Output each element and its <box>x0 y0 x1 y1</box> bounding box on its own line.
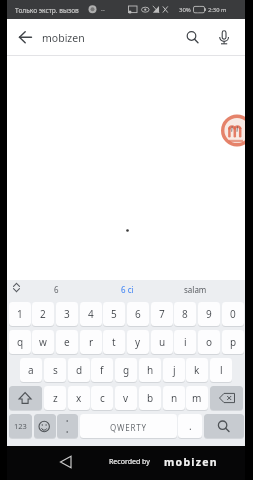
button[interactable]: 7 <box>151 302 173 326</box>
button[interactable]: m <box>186 386 208 410</box>
button[interactable]: u <box>151 330 173 354</box>
staticText: n <box>171 391 178 405</box>
staticText: 2 <box>40 307 46 321</box>
button[interactable] <box>204 414 244 438</box>
staticText: r <box>89 335 94 349</box>
button[interactable]: x <box>68 386 90 410</box>
button[interactable] <box>96 279 158 300</box>
staticText: t <box>112 335 116 349</box>
button[interactable]: k <box>186 358 208 382</box>
button[interactable] <box>14 26 38 50</box>
button[interactable]: v <box>115 386 137 410</box>
staticText: . <box>189 419 192 433</box>
staticText: mobizen <box>42 31 85 45</box>
staticText: 4 <box>88 307 94 321</box>
staticText: b <box>147 391 154 405</box>
staticText: q <box>17 335 24 349</box>
button[interactable]: 5 <box>103 302 125 326</box>
button[interactable]: e <box>56 330 78 354</box>
staticText: 6 <box>54 284 59 295</box>
button[interactable]: f <box>91 358 113 382</box>
button[interactable] <box>8 279 26 299</box>
button[interactable] <box>56 452 78 472</box>
staticText: Только экстр. вызов <box>15 6 79 15</box>
button[interactable] <box>57 414 78 438</box>
button[interactable]: 3 <box>56 302 78 326</box>
staticText: m <box>192 391 202 405</box>
button[interactable]: 123 <box>9 414 32 438</box>
button[interactable]: a <box>20 358 42 382</box>
button[interactable]: l <box>210 358 232 382</box>
button[interactable]: q <box>9 330 31 354</box>
button[interactable]: h <box>139 358 161 382</box>
staticText: 2:30 m <box>208 6 227 14</box>
staticText: h <box>147 363 154 377</box>
staticText: 6 <box>135 307 141 321</box>
staticText: 0 <box>230 307 236 321</box>
button[interactable]: o <box>198 330 220 354</box>
staticText: e <box>64 335 70 349</box>
button[interactable] <box>32 279 80 300</box>
button[interactable]: y <box>127 330 149 354</box>
staticText: a <box>28 363 34 377</box>
button[interactable] <box>80 414 177 438</box>
staticText: mobizen <box>164 455 218 469</box>
staticText: p <box>230 335 237 349</box>
button[interactable] <box>221 114 245 147</box>
button[interactable]: 1 <box>9 302 31 326</box>
staticText: 3 <box>64 307 70 321</box>
button[interactable]: i <box>174 330 196 354</box>
staticText: 8 <box>182 307 188 321</box>
button[interactable]: t <box>103 330 125 354</box>
button[interactable]: b <box>139 386 161 410</box>
button[interactable]: 0 <box>222 302 244 326</box>
staticText: v <box>123 391 129 405</box>
button[interactable]: c <box>91 386 113 410</box>
staticText: 123 <box>14 421 27 431</box>
staticText: l <box>220 363 223 377</box>
staticText: s <box>53 363 58 377</box>
staticText: 30% <box>179 6 191 14</box>
staticText: i <box>184 335 187 349</box>
staticText: y <box>135 335 141 349</box>
button[interactable]: d <box>68 358 90 382</box>
button[interactable]: . <box>178 414 202 438</box>
button[interactable]: j <box>163 358 185 382</box>
staticText: g <box>123 363 130 377</box>
button[interactable]: g <box>115 358 137 382</box>
staticText: salam <box>184 284 207 295</box>
button[interactable]: 6 <box>127 302 149 326</box>
button[interactable]: p <box>222 330 244 354</box>
button[interactable]: s <box>44 358 66 382</box>
button[interactable] <box>212 26 236 50</box>
staticText: z <box>53 391 58 405</box>
staticText: 6 ci <box>121 284 134 295</box>
button[interactable] <box>180 26 204 50</box>
staticText: x <box>76 391 82 405</box>
button[interactable] <box>210 386 243 410</box>
button[interactable] <box>164 279 226 300</box>
button[interactable]: w <box>32 330 54 354</box>
button[interactable]: 4 <box>80 302 102 326</box>
staticText: f <box>100 363 104 377</box>
button[interactable]: n <box>163 386 185 410</box>
button[interactable]: z <box>44 386 66 410</box>
button[interactable] <box>34 414 56 438</box>
staticText: Recorded by <box>109 457 150 467</box>
staticText: .. <box>101 4 105 14</box>
staticText: w <box>39 335 47 349</box>
button[interactable]: r <box>80 330 102 354</box>
staticText: o <box>206 335 213 349</box>
staticText: j <box>173 363 176 377</box>
staticText: 5 <box>111 307 117 321</box>
staticText: 7 <box>159 307 165 321</box>
staticText: QWERTY <box>110 422 147 433</box>
staticText: 1 <box>17 307 23 321</box>
button[interactable]: 8 <box>174 302 196 326</box>
staticText: u <box>159 335 166 349</box>
staticText: c <box>100 391 105 405</box>
button[interactable] <box>9 386 42 410</box>
button[interactable]: 2 <box>32 302 54 326</box>
staticText: k <box>194 363 200 377</box>
button[interactable]: 9 <box>198 302 220 326</box>
